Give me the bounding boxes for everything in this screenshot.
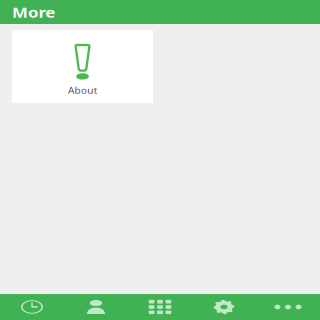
button[interactable]: About bbox=[12, 30, 153, 103]
button[interactable]: More bbox=[256, 294, 320, 320]
staticText: More bbox=[12, 2, 50, 22]
button[interactable]: Recent bbox=[0, 294, 64, 320]
button[interactable]: Settings bbox=[192, 294, 256, 320]
staticText: About bbox=[69, 84, 96, 96]
button[interactable]: Contacts bbox=[64, 294, 128, 320]
button[interactable]: Keypad bbox=[128, 294, 192, 320]
